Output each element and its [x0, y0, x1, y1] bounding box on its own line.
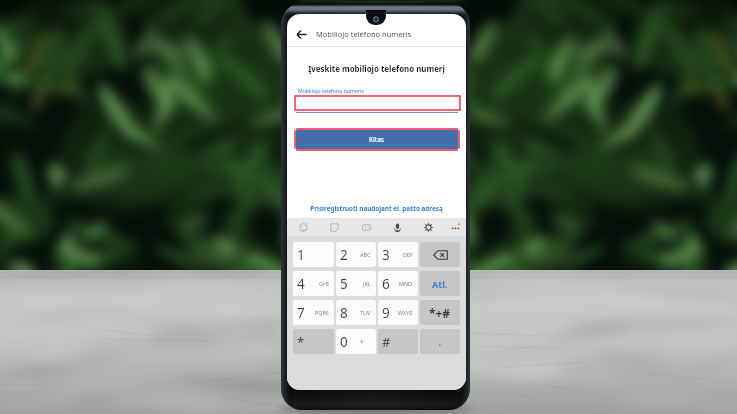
staticText: Atl.	[432, 278, 448, 290]
button[interactable]: More options	[445, 218, 465, 237]
button[interactable]	[420, 242, 460, 267]
staticText: 3	[382, 246, 390, 264]
staticText: 7	[297, 304, 305, 322]
button[interactable]: 4	[293, 271, 334, 296]
button[interactable]: Voice input	[387, 218, 407, 237]
staticText: 9	[382, 304, 390, 322]
button[interactable]: 6	[378, 271, 418, 296]
button[interactable]: Prisiregistruoti naudojant el. pašto adr…	[287, 204, 466, 213]
staticText: Mobiliojo telefono numeris	[298, 87, 364, 94]
button[interactable]: 2	[336, 242, 376, 267]
button[interactable]: Emoji	[293, 218, 313, 237]
staticText: *	[297, 333, 305, 351]
button[interactable]: *+#	[420, 300, 460, 325]
button[interactable]: 0	[336, 329, 376, 354]
staticText: *+#	[429, 305, 451, 321]
button[interactable]: Back	[295, 28, 307, 40]
staticText: DEF	[403, 251, 413, 258]
button[interactable]: #	[378, 329, 418, 354]
staticText: #	[382, 333, 391, 351]
button[interactable]: Back	[287, 22, 466, 46]
staticText: GHI	[319, 280, 329, 287]
staticText: 0	[340, 333, 348, 351]
button[interactable]: 1	[293, 242, 334, 267]
button[interactable]: 5	[336, 271, 376, 296]
staticText: JKL	[363, 280, 371, 287]
staticText: ABC	[360, 251, 371, 258]
staticText: 4	[297, 275, 305, 293]
staticText: WXYZ	[398, 309, 413, 316]
staticText: 1	[297, 246, 305, 264]
staticText: PQRS	[315, 309, 329, 316]
button[interactable]: Kitas	[296, 130, 458, 149]
button[interactable]: Stickers	[324, 218, 344, 237]
staticText: 5	[340, 275, 348, 293]
button[interactable]: 3	[378, 242, 418, 267]
button[interactable]: *	[293, 329, 334, 354]
button[interactable]: Atl.	[420, 271, 460, 296]
staticText: Įveskite mobiliojo telefono numerį	[287, 64, 466, 75]
button[interactable]: 7	[293, 300, 334, 325]
button[interactable]: GIF	[356, 218, 376, 237]
button[interactable]: 9	[378, 300, 418, 325]
button[interactable]: 8	[336, 300, 376, 325]
staticText: +	[360, 337, 364, 346]
button[interactable]	[295, 96, 460, 110]
staticText: ,	[439, 336, 442, 347]
staticText: Mobiliojo telefono numeris	[316, 29, 412, 39]
staticText: TUV	[360, 309, 371, 316]
staticText: 2	[340, 246, 348, 264]
staticText: 8	[340, 304, 348, 322]
staticText: MNO	[399, 280, 413, 287]
staticText: Kitas	[369, 135, 385, 144]
button[interactable]: Settings	[418, 218, 438, 237]
staticText: 6	[382, 275, 390, 293]
